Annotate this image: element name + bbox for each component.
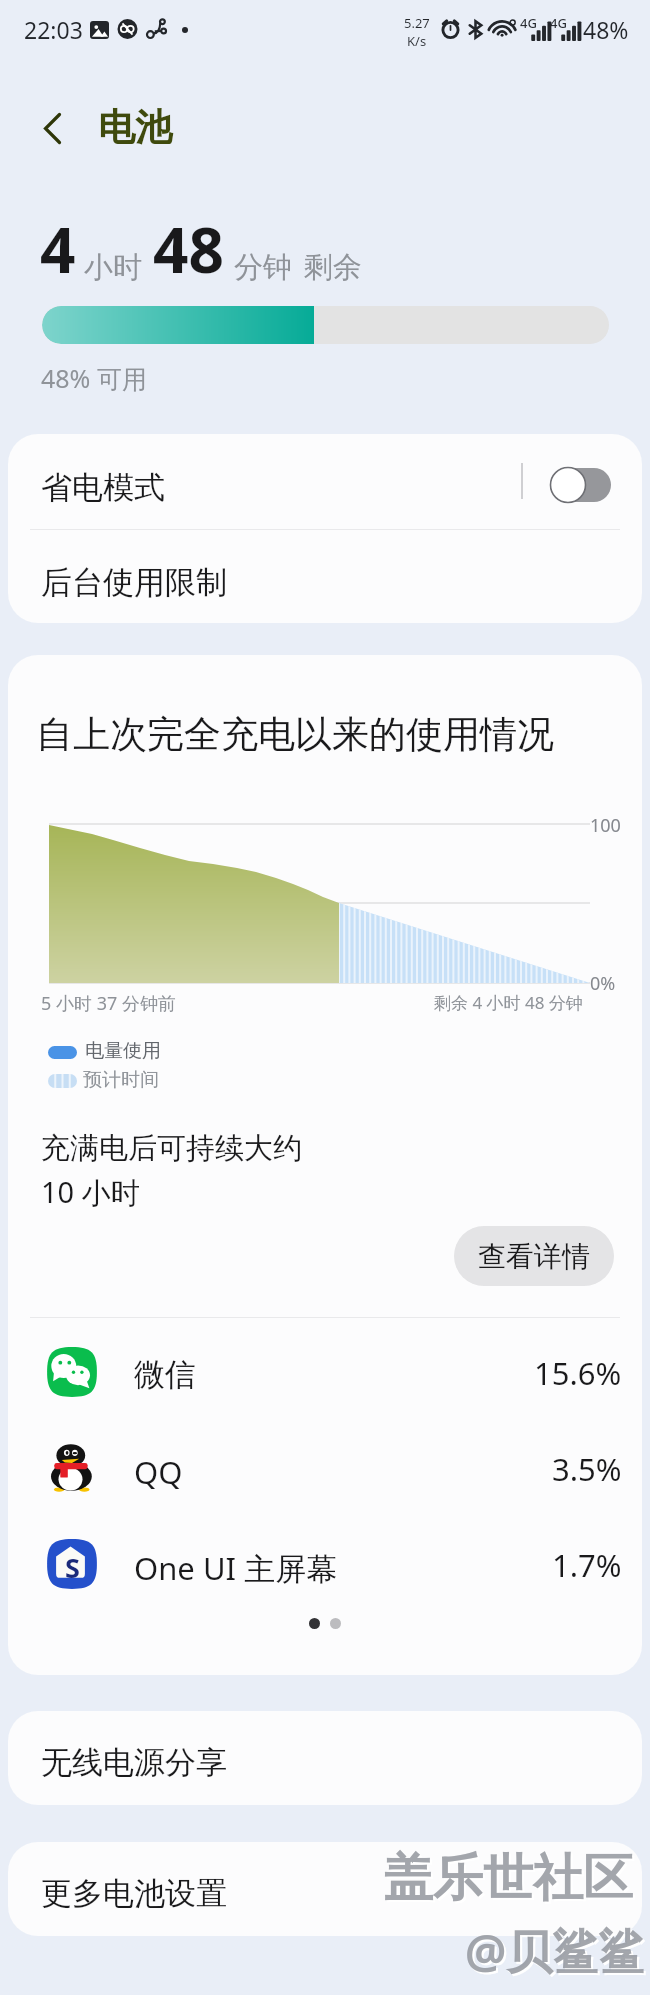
staticText: 分钟 <box>234 249 292 286</box>
button[interactable]: 省电模式 <box>8 434 642 529</box>
staticText: 5 小时 37 分钟前 <box>41 991 176 1016</box>
staticText: 5.27 <box>404 14 430 32</box>
button[interactable]: S <box>8 1517 642 1612</box>
staticText: QQ <box>134 1451 183 1493</box>
staticText: 3.5% <box>552 1448 622 1490</box>
staticText: 盖乐世社区 <box>385 1849 635 1912</box>
button[interactable]: 查看详情 <box>454 1226 614 1286</box>
staticText: 48 <box>153 207 224 291</box>
staticText: 48% <box>583 14 629 45</box>
staticText: 22:03 <box>24 14 83 45</box>
button[interactable]: 省电模式 toggle <box>542 465 620 505</box>
staticText: 1.7% <box>552 1544 622 1586</box>
staticText: 0% <box>590 971 616 996</box>
staticText: 48% 可用 <box>41 361 147 395</box>
staticText: 4G <box>520 14 537 32</box>
button[interactable]: 微信 <box>8 1325 642 1420</box>
staticText: 微信 <box>134 1355 196 1394</box>
staticText: 自上次完全充电以来的使用情况 <box>36 711 554 758</box>
staticText: 小时 <box>84 249 142 286</box>
staticText: 4 <box>40 207 76 291</box>
staticText: 省电模式 <box>41 468 165 507</box>
staticText: S <box>65 1549 80 1586</box>
staticText: 查看详情 <box>478 1239 590 1274</box>
button[interactable]: 无线电源分享 <box>8 1711 642 1805</box>
staticText: 15.6% <box>534 1352 622 1394</box>
staticText: 后台使用限制 <box>41 563 227 602</box>
staticText: 预计时间 <box>83 1068 159 1092</box>
staticText: @贝鲨鲨 <box>465 1919 645 1982</box>
staticText: 无线电源分享 <box>41 1743 227 1782</box>
staticText: 10 小时 <box>41 1172 140 1212</box>
button[interactable]: Back <box>26 102 78 154</box>
staticText: 剩余 <box>304 249 362 286</box>
staticText: 电量使用 <box>85 1039 161 1063</box>
staticText: K/s <box>407 32 427 50</box>
button[interactable]: 更多电池设置 <box>8 1842 642 1936</box>
staticText: 电池 <box>98 104 172 151</box>
button[interactable]: QQ <box>8 1421 642 1516</box>
staticText: 盖乐世社区 <box>383 1847 633 1910</box>
staticText: 充满电后可持续大约 <box>41 1130 302 1167</box>
staticText: @贝鲨鲨 <box>467 1921 647 1984</box>
staticText: 100 <box>590 813 621 838</box>
staticText: 4G <box>550 14 567 32</box>
staticText: 更多电池设置 <box>41 1874 227 1913</box>
staticText: One UI 主屏幕 <box>134 1547 338 1589</box>
button[interactable]: 后台使用限制 <box>8 530 642 623</box>
staticText: 剩余 4 小时 48 分钟 <box>434 991 583 1014</box>
